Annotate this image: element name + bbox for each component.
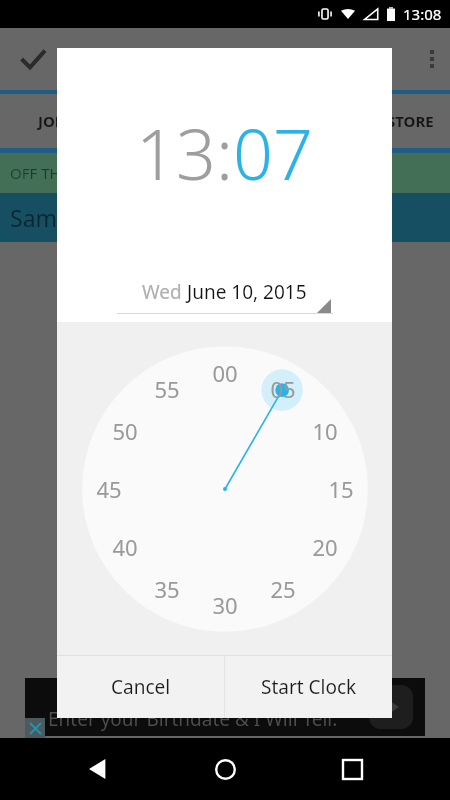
staticText: 13:07 — [136, 105, 313, 200]
button[interactable]: Close ad — [25, 718, 45, 738]
staticText: 30 — [212, 590, 238, 620]
staticText: June 10, 2015 — [187, 279, 307, 305]
button[interactable]: Play — [369, 685, 413, 729]
staticText: 35 — [154, 574, 180, 604]
button[interactable]: Confirm — [18, 44, 48, 74]
staticText: Enter your Birthdate & I Will Tell. — [48, 706, 338, 732]
staticText: 55 — [154, 374, 180, 404]
button[interactable]: Recents — [324, 741, 380, 797]
staticText: Wed — [142, 279, 187, 305]
staticText: STORE — [387, 111, 434, 131]
staticText: 40 — [112, 532, 138, 562]
staticText: 45 — [96, 474, 122, 504]
button[interactable]: Back — [71, 741, 127, 797]
button[interactable]: Cancel — [57, 656, 224, 718]
staticText: Select Jobs — [88, 45, 194, 74]
staticText: 10 — [312, 416, 338, 446]
staticText: 13:08 — [403, 4, 442, 24]
staticText: Cancel — [111, 674, 171, 700]
staticText: 25 — [270, 574, 296, 604]
button[interactable]: Start Clock — [225, 656, 392, 718]
staticText: JOBS — [38, 111, 74, 131]
staticText: 15 — [328, 474, 354, 504]
button[interactable]: Home — [197, 741, 253, 797]
button[interactable]: More options — [430, 50, 434, 68]
button[interactable]: 00 — [80, 344, 370, 634]
staticText: Start Clock — [261, 674, 357, 700]
button[interactable]: Wed — [57, 273, 392, 322]
staticText: 50 — [112, 416, 138, 446]
staticText: 00 — [212, 358, 238, 388]
staticText: 20 — [312, 532, 338, 562]
staticText: 05 — [270, 374, 296, 404]
staticText: OFF THE — [10, 163, 69, 183]
staticText: Sam — [10, 202, 58, 233]
